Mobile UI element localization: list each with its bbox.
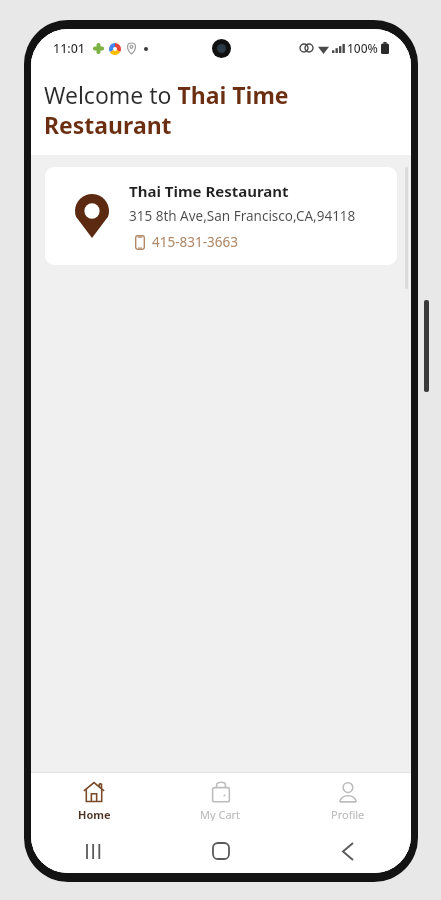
button[interactable]: Home xyxy=(157,829,284,873)
staticText: Profile xyxy=(331,807,365,821)
button[interactable]: Recent apps xyxy=(31,829,157,873)
staticText: 315 8th Ave,San Francisco,CA,94118 xyxy=(129,207,356,225)
button[interactable]: Profile xyxy=(284,773,411,829)
staticText: Thai Time Restaurant xyxy=(129,181,289,201)
staticText: Home xyxy=(78,807,111,821)
staticText: 100% xyxy=(347,40,378,56)
button[interactable]: Home xyxy=(31,773,157,829)
staticText: 415-831-3663 xyxy=(152,233,238,251)
button[interactable]: Back xyxy=(284,829,411,873)
staticText: My Cart xyxy=(200,807,241,821)
staticText: 11:01 xyxy=(53,40,86,57)
button[interactable]: Thai Time Restaurant xyxy=(45,167,397,265)
button[interactable]: My Cart xyxy=(157,773,284,829)
staticText: Welcome to Thai Time Restaurant xyxy=(44,79,395,141)
